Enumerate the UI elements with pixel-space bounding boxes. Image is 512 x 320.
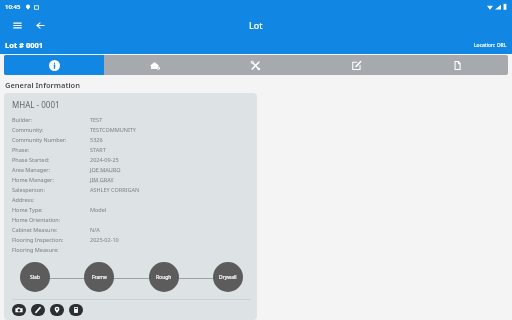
staticText: 2024-09-25 [90,156,119,163]
staticText: Home Orientation: [12,216,90,223]
staticText: Community Number: [12,136,90,143]
staticText: Model [90,206,107,213]
button[interactable]: Camera [12,304,26,316]
staticText: N/A [90,226,100,233]
staticText: Community: [12,126,90,133]
button[interactable]: Location [50,304,64,316]
staticText: Lot [249,19,263,31]
staticText: 2025-02-10 [90,236,119,243]
staticText: Salesperson: [12,186,90,193]
staticText: Address: [12,196,90,203]
staticText: TEST [90,116,103,123]
button[interactable]: Information [4,55,104,75]
staticText: START [90,146,106,153]
staticText: Cabinet Measure: [12,226,90,233]
staticText: Home Manager: [12,176,90,183]
staticText: Location: ORL [474,42,507,49]
button[interactable]: Notes [69,304,83,316]
button[interactable]: Documents [407,55,508,75]
staticText: Frame [92,274,107,281]
staticText: Area Manager: [12,166,90,173]
button[interactable]: Back [31,16,49,34]
staticText: Builder: [12,116,90,123]
button[interactable]: Menu [8,16,26,34]
staticText: Home Type: [12,206,90,213]
button[interactable]: Drywall [213,262,243,292]
button[interactable]: Edit [306,55,407,75]
staticText: TESTCOMMUNITY [90,126,136,133]
staticText: Rough [156,274,172,281]
staticText: MHAL - 0001 [12,99,60,110]
staticText: Drywall [219,274,237,281]
button[interactable]: Frame [84,262,114,292]
staticText: Flooring Measure: [12,246,90,253]
button[interactable]: Tools [205,55,306,75]
staticText: General Information [5,80,80,90]
staticText: JOE MAURO [90,166,121,173]
staticText: Lot # 0001 [5,40,44,50]
staticText: 10:45 [5,3,21,11]
staticText: 5326 [90,136,103,143]
staticText: JIM GRAY [90,176,114,183]
staticText: Phase Started: [12,156,90,163]
staticText: Slab [30,274,40,281]
staticText: ASHLEY CORRIGAN [90,186,140,193]
button[interactable]: Attachment [31,304,45,316]
staticText: Flooring Inspection: [12,236,90,243]
button[interactable]: Home [104,55,205,75]
button[interactable]: Slab [20,262,50,292]
button[interactable]: Rough [149,262,179,292]
staticText: Phase: [12,146,90,153]
